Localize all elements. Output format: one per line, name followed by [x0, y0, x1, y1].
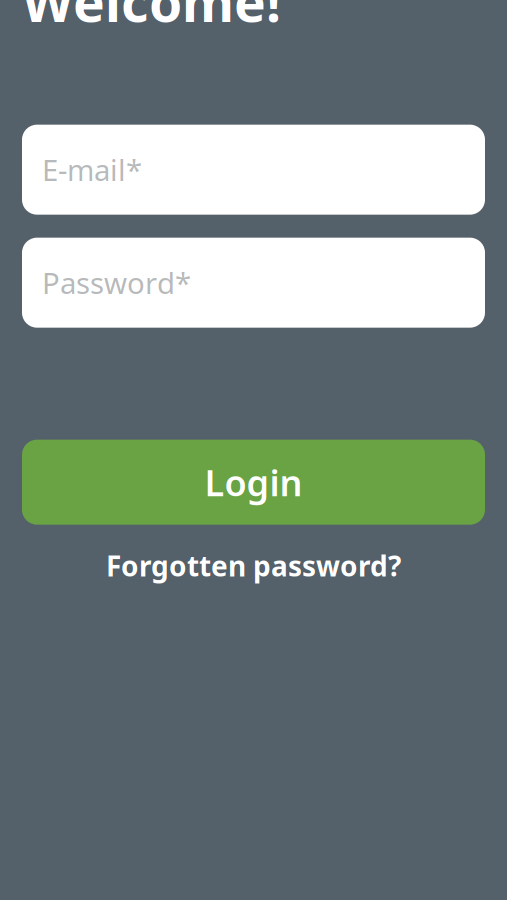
staticText: Welcome! [22, 0, 281, 37]
staticText: Forgotten password? [106, 547, 401, 584]
staticText: E-mail* [42, 150, 142, 189]
button[interactable]: Login [22, 440, 485, 525]
button[interactable]: E-mail* [22, 125, 485, 215]
button[interactable]: Forgotten password? [22, 544, 485, 588]
staticText: Login [204, 458, 302, 506]
staticText: Password* [42, 263, 191, 302]
button[interactable]: Password* [22, 238, 485, 328]
